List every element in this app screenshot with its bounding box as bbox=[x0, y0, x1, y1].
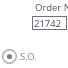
button[interactable]: S.O. option selected bbox=[2, 48, 46, 65]
staticText: Order N bbox=[35, 1, 68, 13]
button[interactable]: 21742 bbox=[32, 16, 67, 30]
staticText: S.O. bbox=[20, 50, 37, 63]
staticText: 21742 bbox=[34, 17, 62, 30]
